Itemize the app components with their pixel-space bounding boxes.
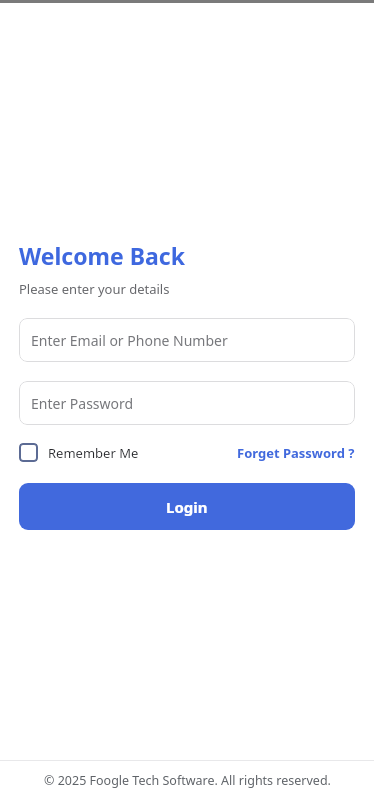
staticText: Remember Me <box>48 444 139 462</box>
staticText: Welcome Back <box>19 240 185 271</box>
other: Remember Me checkbox <box>19 443 38 462</box>
staticText: Forget Password ? <box>237 444 355 462</box>
button[interactable]: Forget Password ? <box>237 444 355 462</box>
button[interactable]: Login <box>19 483 355 530</box>
staticText: Login <box>166 497 208 517</box>
staticText: Enter Email or Phone Number <box>31 331 228 350</box>
staticText: Please enter your details <box>19 280 170 298</box>
button[interactable]: Enter Password <box>19 381 355 425</box>
button[interactable]: Remember Me checkbox <box>19 443 139 462</box>
staticText: Enter Password <box>31 394 134 413</box>
staticText: © 2025 Foogle Tech Software. All rights … <box>44 772 331 789</box>
button[interactable]: Enter Email or Phone Number <box>19 318 355 362</box>
